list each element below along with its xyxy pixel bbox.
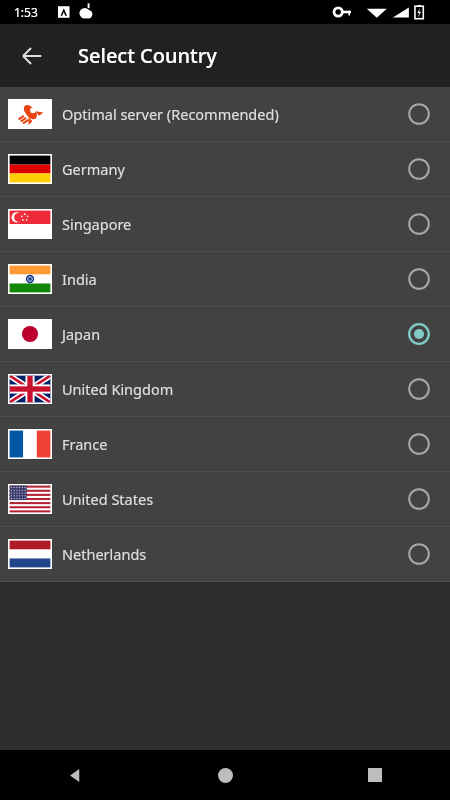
button[interactable]: India select xyxy=(397,257,441,301)
staticText: Germany xyxy=(62,159,125,179)
button[interactable]: Optimal server (Recommended) xyxy=(0,87,450,141)
button[interactable]: Home xyxy=(150,750,300,800)
staticText: Singapore xyxy=(62,214,132,234)
staticText: India xyxy=(62,269,97,289)
staticText: France xyxy=(62,434,108,454)
staticText: Netherlands xyxy=(62,544,147,564)
button[interactable]: Japan select xyxy=(397,312,441,356)
button[interactable]: Netherlands xyxy=(0,527,450,581)
staticText: United States xyxy=(62,489,154,509)
staticText: United Kingdom xyxy=(62,379,174,399)
staticText: Japan xyxy=(62,324,101,344)
staticText: Select Country xyxy=(78,42,217,69)
button[interactable]: United States xyxy=(0,472,450,526)
button[interactable]: Optimal server (Recommended) select xyxy=(397,92,441,136)
button[interactable]: France select xyxy=(397,422,441,466)
button[interactable]: Netherlands select xyxy=(397,532,441,576)
button[interactable]: United Kingdom select xyxy=(397,367,441,411)
button[interactable]: Germany xyxy=(0,142,450,196)
button[interactable]: India xyxy=(0,252,450,306)
button[interactable]: Recent apps xyxy=(300,750,450,800)
button[interactable]: United States select xyxy=(397,477,441,521)
button[interactable]: France xyxy=(0,417,450,471)
button[interactable]: Japan xyxy=(0,307,450,361)
staticText: 1:53 xyxy=(14,4,38,20)
button[interactable]: Back xyxy=(0,750,150,800)
button[interactable]: Back xyxy=(8,32,56,80)
staticText: Optimal server (Recommended) xyxy=(62,104,279,124)
button[interactable]: Germany select xyxy=(397,147,441,191)
button[interactable]: Singapore select xyxy=(397,202,441,246)
button[interactable]: United Kingdom xyxy=(0,362,450,416)
button[interactable]: Singapore xyxy=(0,197,450,251)
